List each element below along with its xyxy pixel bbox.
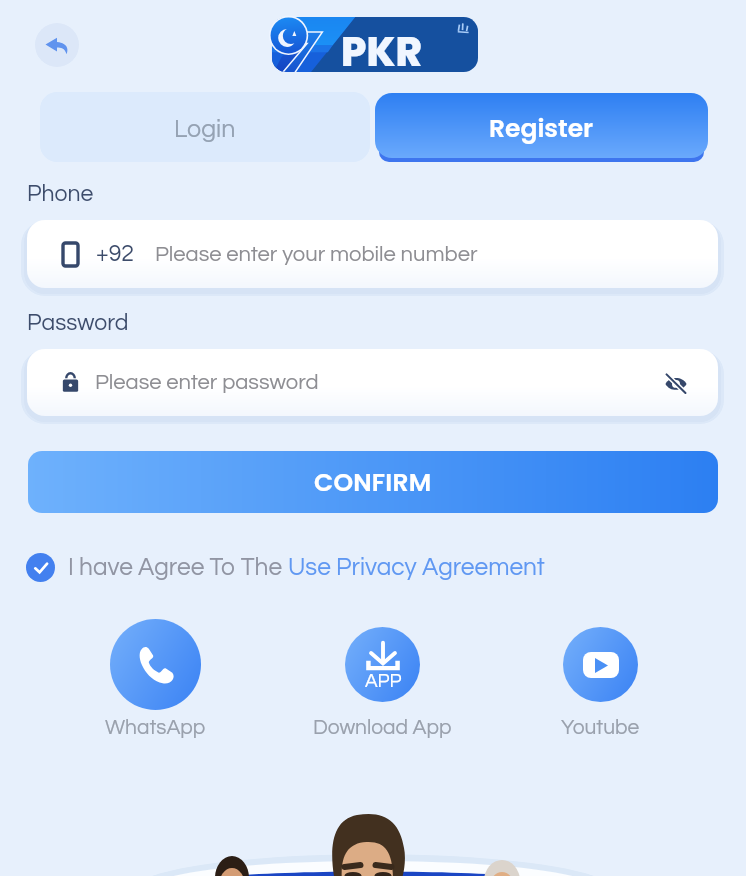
- staticText: PKR: [341, 24, 422, 80]
- staticText: +92: [96, 242, 134, 266]
- staticText: Please enter your mobile number: [155, 243, 478, 266]
- staticText: WhatsApp: [105, 717, 206, 739]
- staticText: I have Agree To The: [68, 555, 288, 580]
- staticText: Password: [27, 311, 129, 335]
- button[interactable]: Show password: [650, 357, 702, 409]
- staticText: Phone: [27, 182, 94, 206]
- staticText: Please enter password: [95, 371, 319, 394]
- button[interactable]: APP: [302, 627, 462, 743]
- button[interactable]: I have Agree To The: [26, 550, 545, 584]
- staticText: CONFIRM: [314, 465, 432, 500]
- button[interactable]: Login: [40, 92, 370, 162]
- staticText: Youtube: [561, 717, 640, 739]
- staticText: Download App: [313, 717, 452, 739]
- staticText: APP: [365, 671, 402, 691]
- button[interactable]: +92: [27, 220, 718, 288]
- button[interactable]: Back: [35, 23, 79, 67]
- staticText: Use Privacy Agreement: [288, 555, 545, 580]
- staticText: Login: [174, 116, 236, 142]
- button[interactable]: Register: [375, 93, 708, 158]
- button[interactable]: WhatsApp: [75, 619, 235, 743]
- button[interactable]: Please enter password: [27, 349, 718, 416]
- button[interactable]: Youtube: [520, 627, 680, 743]
- button[interactable]: CONFIRM: [28, 451, 718, 513]
- staticText: Register: [489, 111, 594, 146]
